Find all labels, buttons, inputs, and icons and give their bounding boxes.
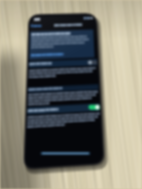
button[interactable]: Phone on wooden desk (0, 0, 142, 189)
